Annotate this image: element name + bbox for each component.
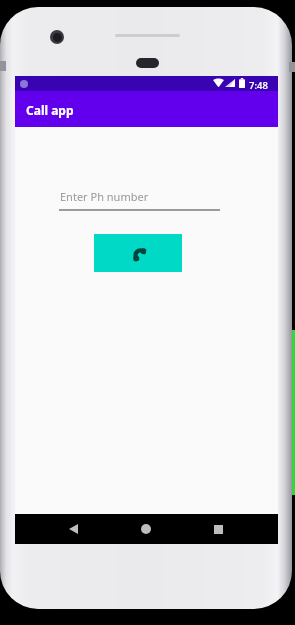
button[interactable]: Back: [44, 514, 102, 544]
staticText: Call app: [26, 102, 74, 118]
button[interactable]: Enter Ph number: [59, 187, 220, 213]
staticText: 7:48: [249, 79, 268, 92]
button[interactable]: Recents: [189, 514, 247, 544]
button[interactable]: Call: [94, 234, 182, 272]
staticText: Enter Ph number: [60, 189, 149, 204]
button[interactable]: Home: [117, 514, 175, 544]
